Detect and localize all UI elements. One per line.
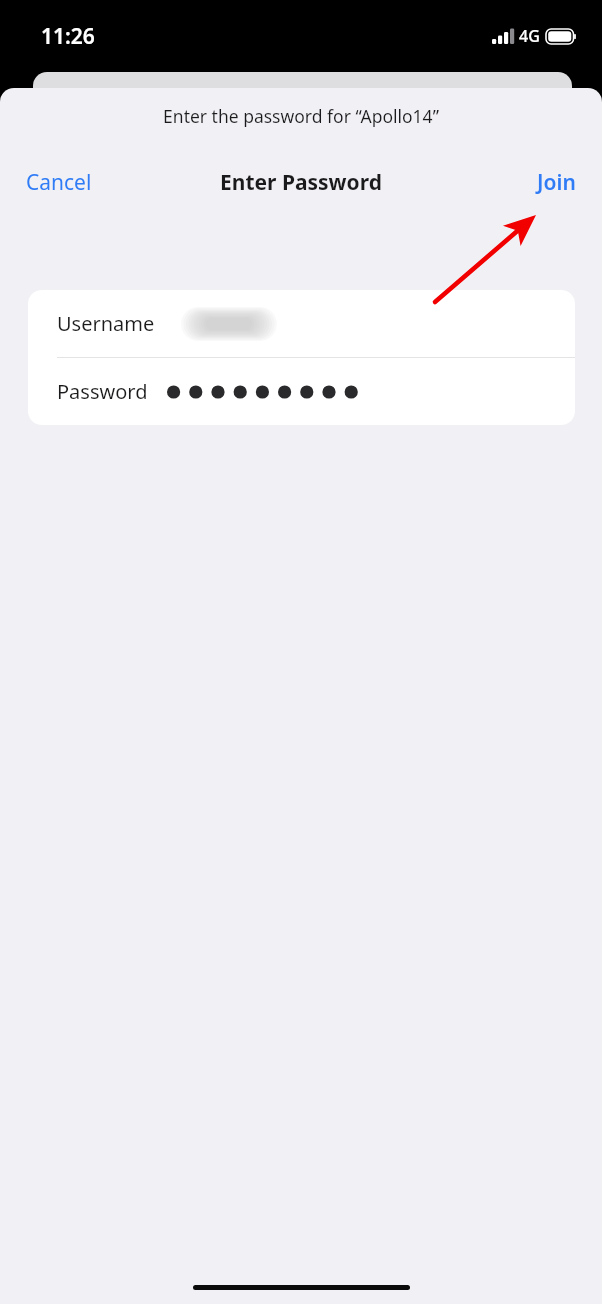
button[interactable]: Password [28,358,575,425]
staticText: Username [57,310,155,337]
staticText: 4G [519,25,540,47]
staticText: Password [57,378,148,405]
button[interactable]: Username [28,290,575,357]
button[interactable]: Join [511,162,602,203]
staticText: 11:26 [41,22,95,51]
staticText: Join [537,168,576,197]
staticText: Enter the password for “Apollo14” [0,104,602,128]
button[interactable]: Cancel [0,162,118,203]
staticText: Enter Password [220,168,382,197]
staticText: Cancel [26,168,92,197]
